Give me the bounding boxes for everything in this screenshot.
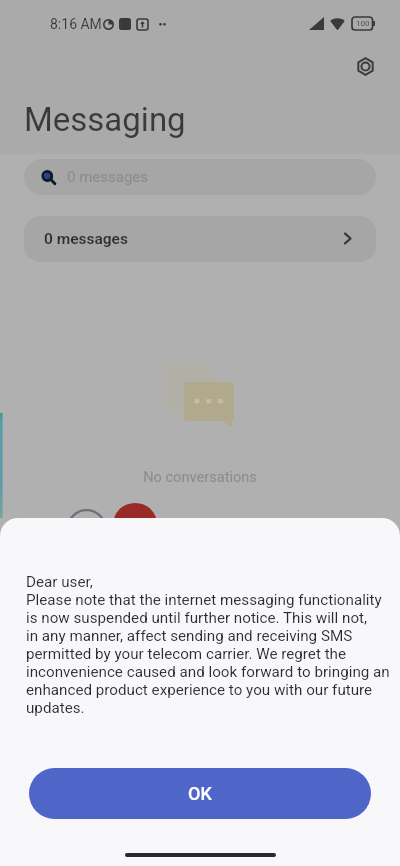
button[interactable]: 0 messages [24, 216, 376, 262]
staticText: Messaging [24, 100, 186, 139]
button[interactable]: 0 messages [24, 159, 376, 195]
staticText: OK [188, 783, 212, 804]
staticText: 100 [356, 19, 370, 28]
staticText: No conversations [0, 468, 400, 485]
staticText: 8:16 AM [50, 16, 102, 32]
staticText: 0 messages [67, 168, 149, 186]
staticText: Dear user, Please note that the internet… [26, 573, 390, 717]
staticText: 0 messages [44, 230, 128, 248]
button[interactable]: Dear user, Please note that the internet… [0, 518, 400, 866]
button[interactable]: Settings [350, 51, 381, 82]
button[interactable]: OK [29, 768, 371, 819]
